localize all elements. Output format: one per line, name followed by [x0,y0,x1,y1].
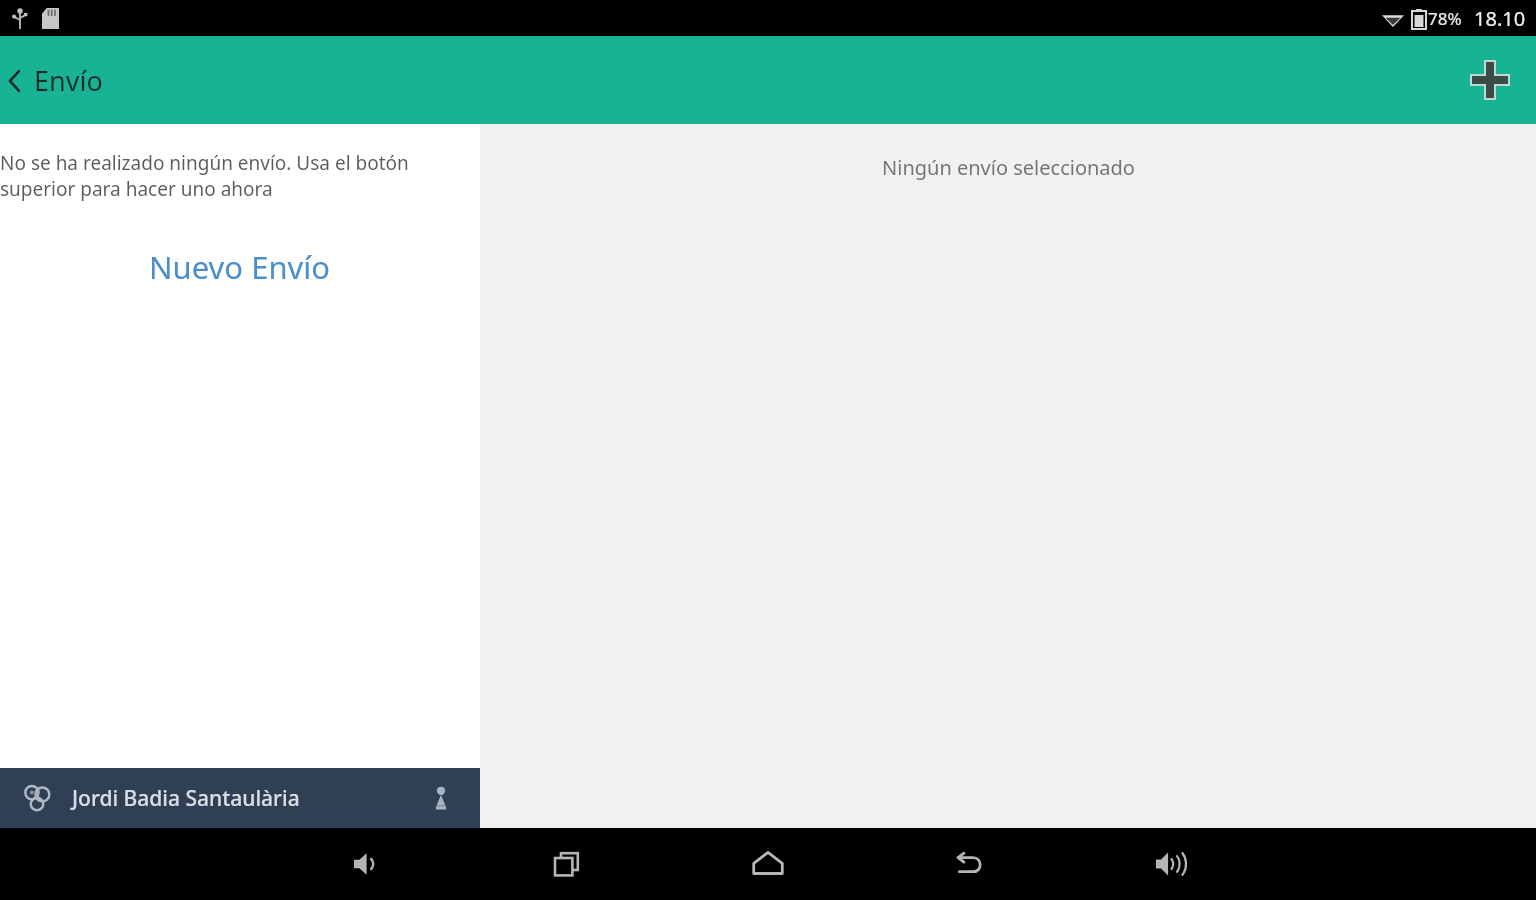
staticText: 18.10 [1474,5,1526,32]
staticText: Jordi Badia Santaulària [72,784,424,813]
staticText: Ningún envío seleccionado [882,154,1135,181]
button[interactable]: Bajar volumen [330,828,402,900]
button[interactable]: Perfil [424,781,458,815]
staticText: Envío [34,62,103,99]
button[interactable]: Recientes [531,828,603,900]
button[interactable]: Nuevo Envío [0,240,480,294]
staticText: No se ha realizado ningún envío. Usa el … [0,150,464,202]
staticText: Nuevo Envío [149,246,331,288]
button[interactable]: Inicio [732,828,804,900]
button[interactable]: Subir volumen [1134,828,1206,900]
button[interactable]: Jordi Badia Santaulària [0,768,480,828]
button[interactable]: Envío [0,54,119,107]
button[interactable]: Atrás [933,828,1005,900]
button[interactable]: Nuevo envío [1462,52,1518,108]
staticText: 78% [1428,7,1462,30]
